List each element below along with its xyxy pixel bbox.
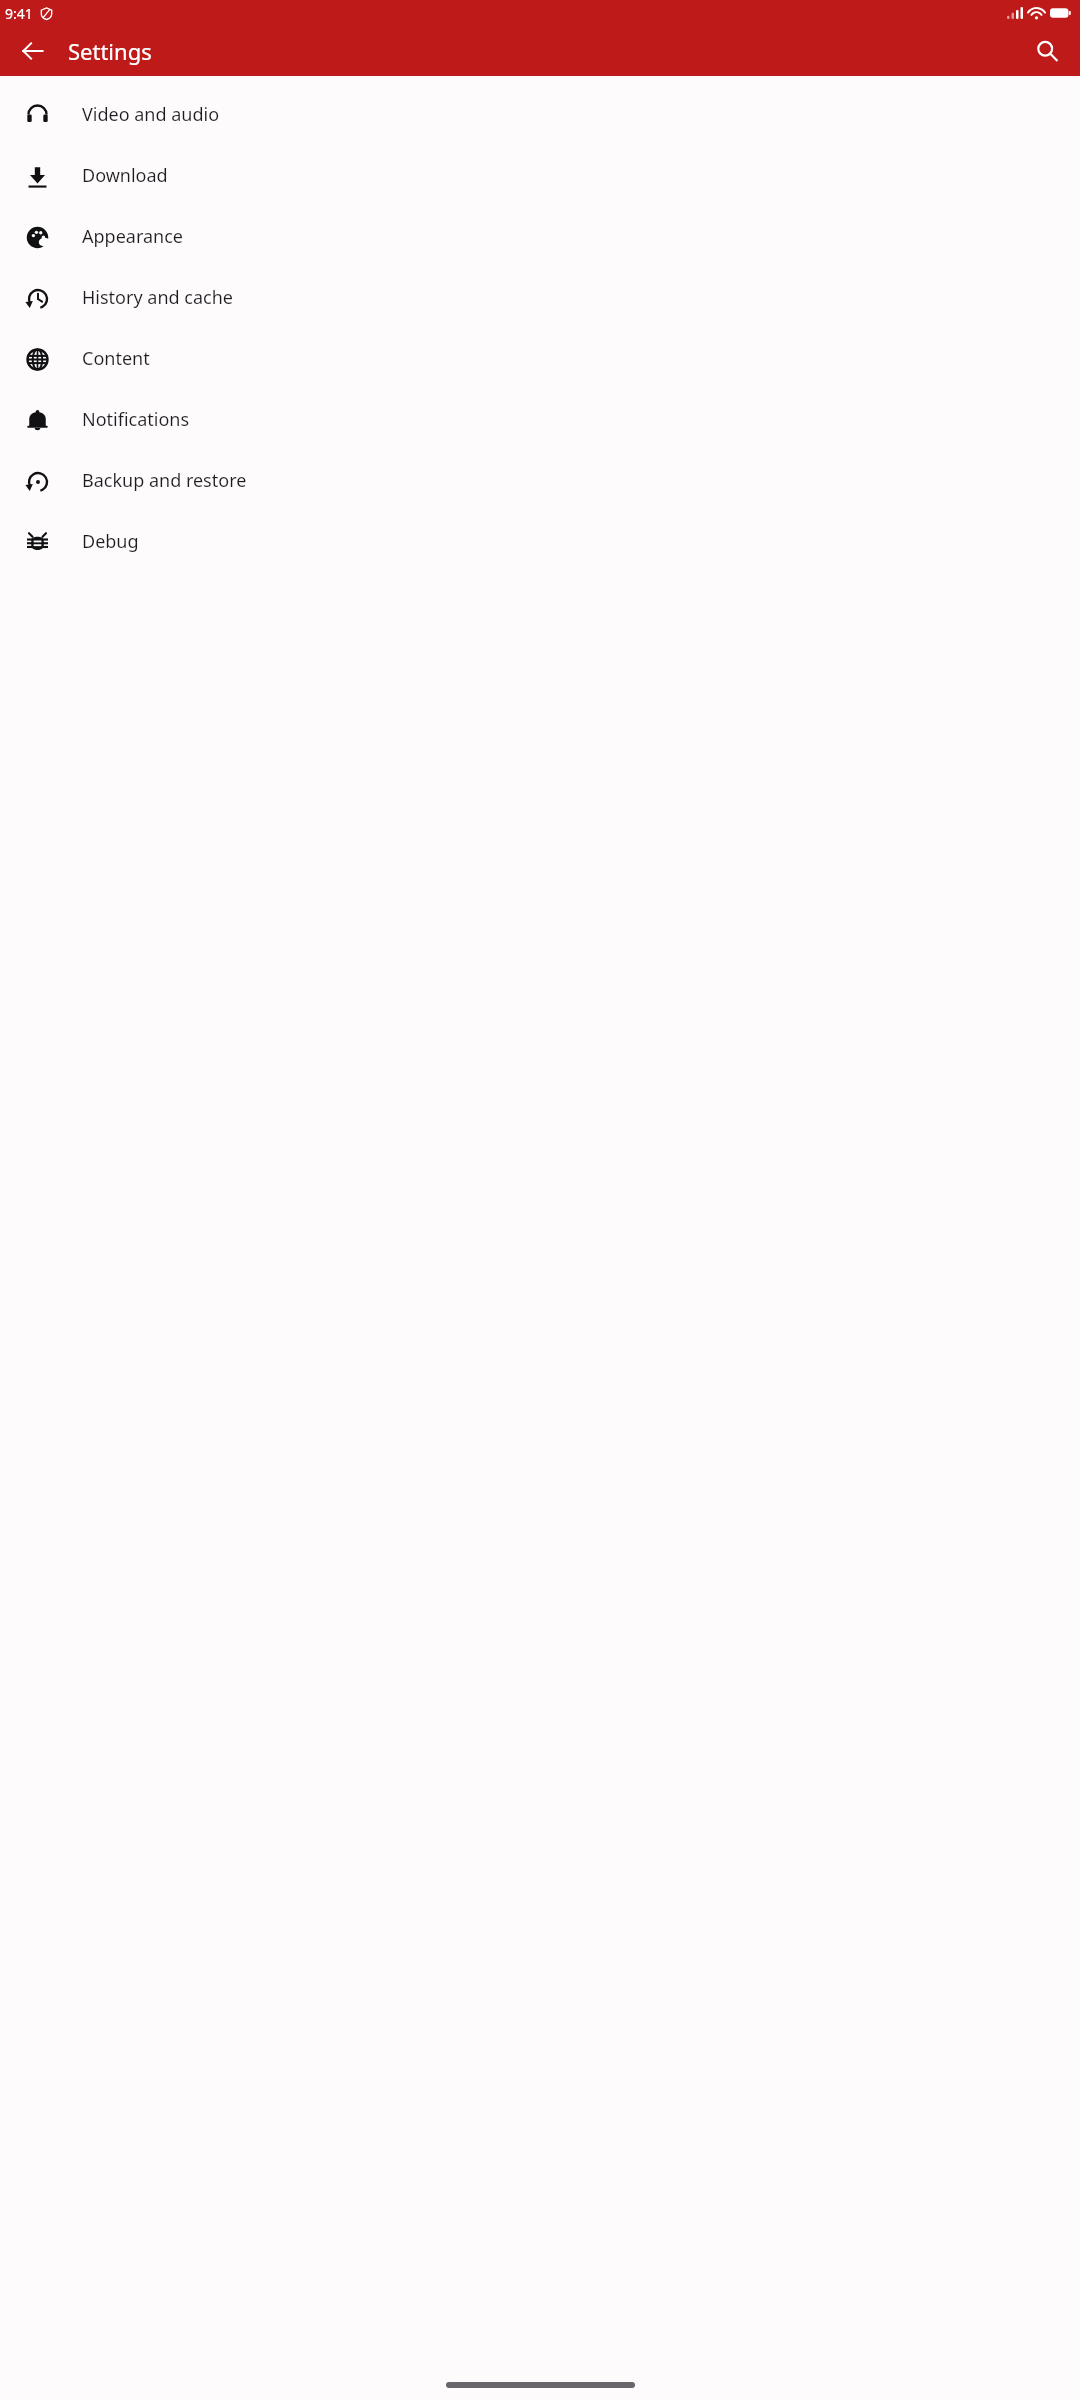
staticText: Download [82, 163, 168, 188]
button[interactable]: Debug [0, 511, 1080, 572]
staticText: Debug [82, 529, 139, 554]
staticText: Content [82, 346, 150, 371]
button[interactable]: Video and audio [0, 84, 1080, 145]
staticText: History and cache [82, 285, 233, 310]
staticText: Appearance [82, 224, 183, 249]
staticText: 9:41 [5, 4, 33, 23]
button[interactable]: Appearance [0, 206, 1080, 267]
button[interactable]: History and cache [0, 267, 1080, 328]
button[interactable]: Search [1023, 27, 1071, 75]
staticText: Notifications [82, 407, 190, 432]
button[interactable]: Download [0, 145, 1080, 206]
button[interactable]: Backup and restore [0, 450, 1080, 511]
staticText: Video and audio [82, 102, 220, 127]
staticText: Settings [68, 36, 152, 66]
button[interactable]: Content [0, 328, 1080, 389]
button[interactable]: Notifications [0, 389, 1080, 450]
staticText: Backup and restore [82, 468, 247, 493]
button[interactable]: Back [9, 27, 57, 75]
